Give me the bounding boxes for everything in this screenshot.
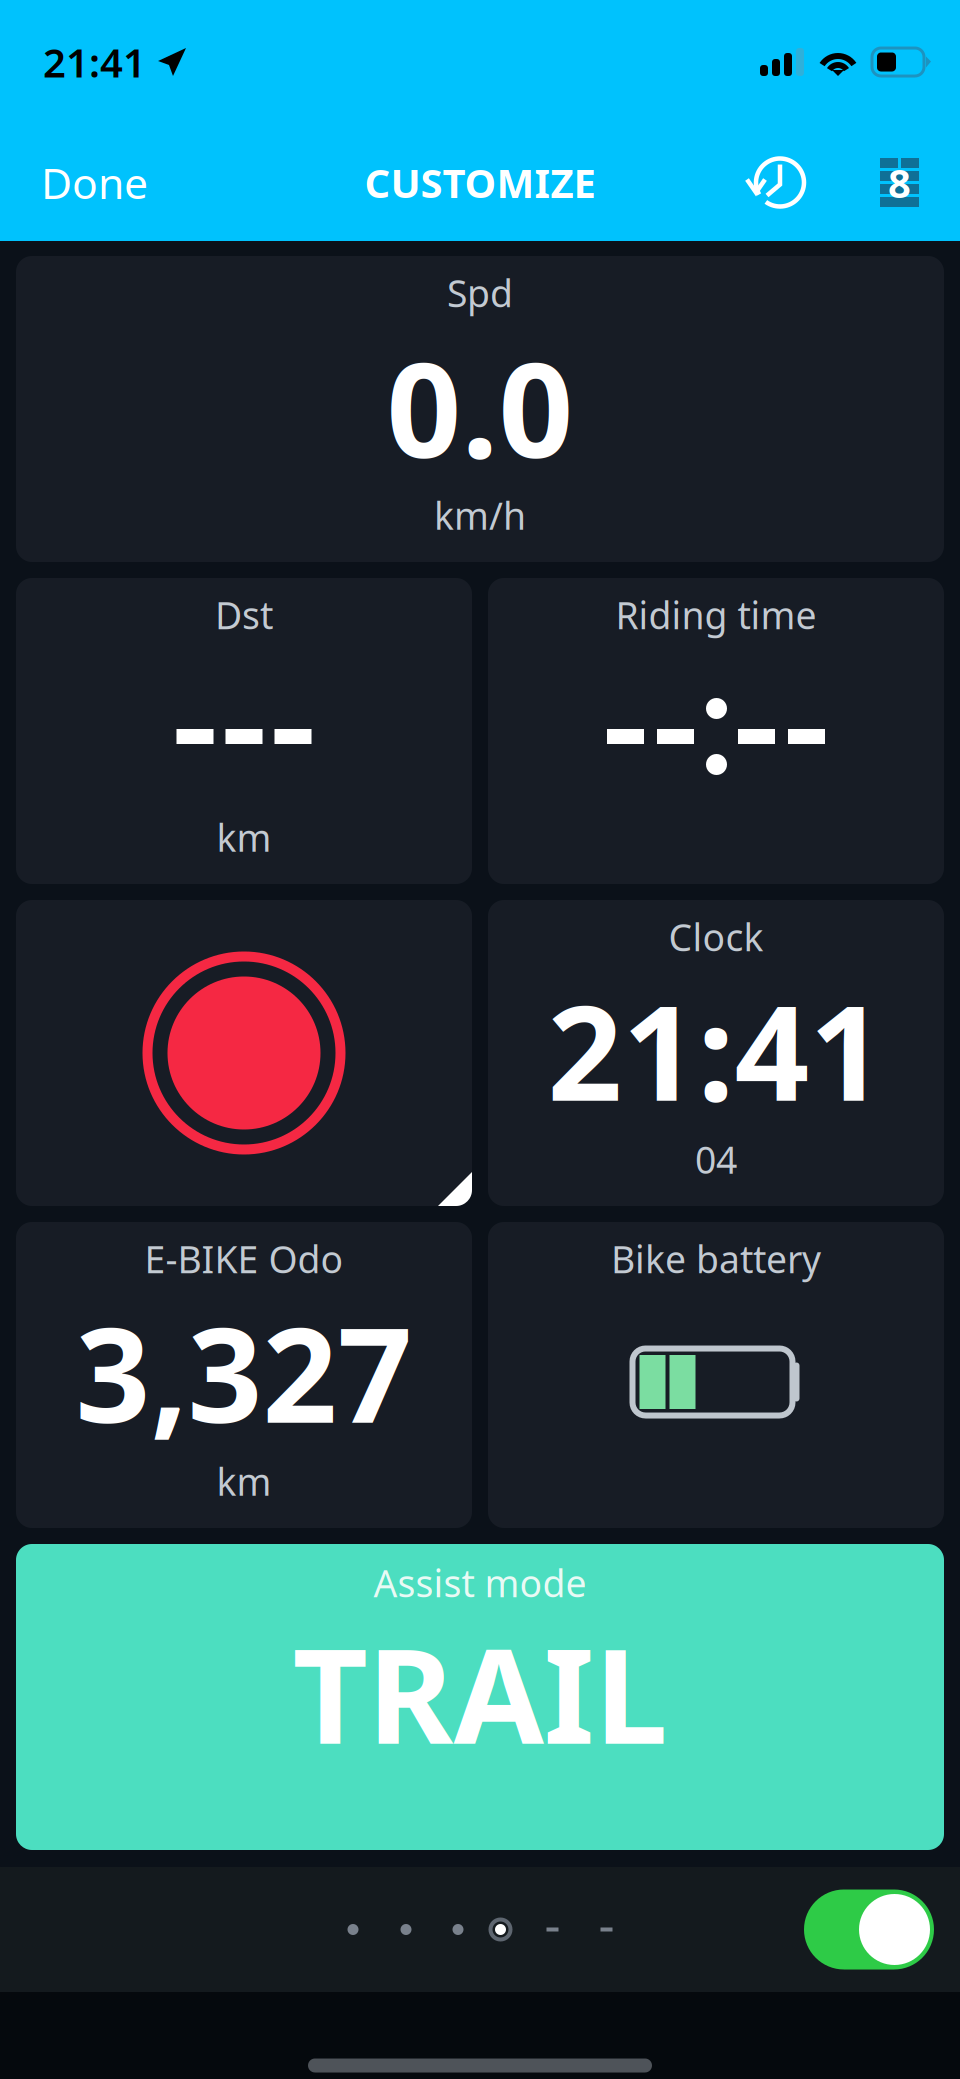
button[interactable]: Riding time: [488, 578, 944, 884]
button[interactable]: Grid size: [880, 156, 919, 208]
staticText: 21:41: [43, 35, 146, 88]
staticText: Done: [41, 154, 148, 211]
staticText: Assist mode: [373, 1558, 586, 1608]
staticText: CUSTOMIZE: [364, 156, 595, 209]
staticText: 04: [695, 1134, 737, 1184]
staticText: 21:41: [547, 963, 884, 1137]
staticText: Riding time: [615, 590, 816, 640]
staticText: km: [216, 812, 271, 862]
button[interactable]: Bike battery: [488, 1222, 944, 1528]
staticText: Spd: [447, 268, 513, 318]
staticText: 8: [888, 156, 911, 209]
button[interactable]: Done: [41, 154, 148, 211]
staticText: 3,327: [75, 1285, 412, 1459]
button[interactable]: Spd: [16, 256, 944, 562]
staticText: Bike battery: [611, 1234, 821, 1284]
staticText: km/h: [434, 490, 526, 540]
staticText: km: [216, 1456, 271, 1506]
staticText: TRAIL: [292, 1606, 667, 1780]
button[interactable]: Dst: [16, 578, 472, 884]
button[interactable]: Edit layout: [804, 1889, 934, 1969]
button[interactable]: Record: [16, 900, 472, 1206]
staticText: 0.0: [386, 320, 573, 494]
button[interactable]: Reset layout: [744, 155, 806, 209]
button[interactable]: E-BIKE Odo: [16, 1222, 472, 1528]
staticText: E-BIKE Odo: [144, 1234, 343, 1284]
button[interactable]: Clock: [488, 900, 944, 1206]
staticText: Clock: [668, 912, 763, 962]
staticText: Dst: [215, 590, 273, 640]
button[interactable]: Assist mode: [16, 1544, 944, 1850]
